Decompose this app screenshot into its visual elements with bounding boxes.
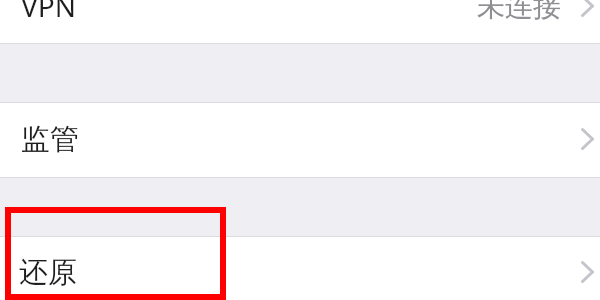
- button[interactable]: 监管: [0, 103, 600, 177]
- staticText: 监管: [21, 121, 79, 158]
- staticText: 还原: [19, 254, 77, 291]
- button[interactable]: VPN: [0, 0, 600, 43]
- staticText: 未连接: [477, 0, 561, 24]
- button[interactable]: 还原: [0, 237, 600, 300]
- staticText: VPN: [21, 0, 77, 25]
